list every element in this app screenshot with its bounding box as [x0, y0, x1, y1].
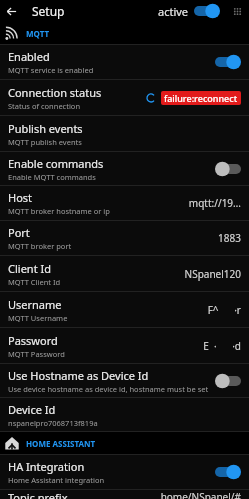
- button[interactable]: More options: [228, 2, 246, 20]
- staticText: Connection status: [8, 85, 102, 100]
- button[interactable]: Device Id: [0, 398, 249, 431]
- button[interactable]: Enabled: [0, 45, 249, 79]
- button[interactable]: Enable commands: [0, 152, 249, 185]
- button[interactable]: Use Hostname as Device Id: [0, 364, 249, 397]
- staticText: MQTT Username: [8, 313, 68, 323]
- staticText: E ⸱ ⸱d: [203, 339, 241, 353]
- staticText: HOME ASSISTANT: [26, 438, 96, 449]
- staticText: Home Assistant integration: [8, 475, 105, 485]
- staticText: failure:reconnect: [164, 92, 238, 104]
- staticText: MQTT broker hostname or ip: [8, 206, 110, 216]
- staticText: Port: [8, 225, 30, 240]
- staticText: Use Hostname as Device Id: [8, 368, 149, 383]
- staticText: Use device hostname as device id, hostna…: [8, 384, 209, 394]
- button[interactable]: Password: [0, 328, 249, 363]
- button[interactable]: Client Id: [0, 256, 249, 291]
- button[interactable]: Connection status: [0, 80, 249, 115]
- staticText: Setup: [32, 3, 65, 19]
- staticText: Enabled: [8, 49, 50, 64]
- staticText: Enable commands: [8, 156, 104, 171]
- staticText: MQTT publish events: [8, 137, 82, 147]
- staticText: Username: [8, 297, 62, 312]
- staticText: Publish events: [8, 121, 83, 136]
- button[interactable]: Port: [0, 221, 249, 255]
- staticText: home/NSpanel/#: [160, 490, 241, 499]
- staticText: Device Id: [8, 402, 56, 417]
- staticText: MQTT Client Id: [8, 277, 61, 287]
- staticText: mqtt://19…: [188, 196, 241, 210]
- staticText: Password: [8, 333, 58, 348]
- staticText: Status of connection: [8, 101, 81, 111]
- staticText: MQTT service is enabled: [8, 65, 94, 75]
- button[interactable]: HA Integration: [0, 455, 249, 489]
- staticText: MQTT broker port: [8, 241, 72, 251]
- staticText: HA Integration: [8, 459, 85, 474]
- button[interactable]: Back: [0, 0, 22, 22]
- staticText: Client Id: [8, 261, 51, 276]
- staticText: Enable MQTT commands: [8, 172, 96, 182]
- button[interactable]: Publish events: [0, 116, 249, 151]
- staticText: F^ ⸱r: [207, 303, 241, 317]
- staticText: Topic prefix: [8, 490, 68, 499]
- staticText: MQTT Password: [8, 349, 65, 359]
- staticText: NSpanel120: [184, 267, 241, 281]
- button[interactable]: Topic prefix: [0, 490, 249, 499]
- staticText: active: [158, 4, 189, 19]
- button[interactable]: Username: [0, 292, 249, 327]
- staticText: MQTT: [26, 28, 50, 39]
- staticText: 1883: [218, 231, 241, 245]
- staticText: nspanelpro7068713f819a: [8, 418, 98, 428]
- button[interactable]: active: [156, 3, 222, 19]
- staticText: Host: [8, 190, 33, 205]
- button[interactable]: Host: [0, 186, 249, 220]
